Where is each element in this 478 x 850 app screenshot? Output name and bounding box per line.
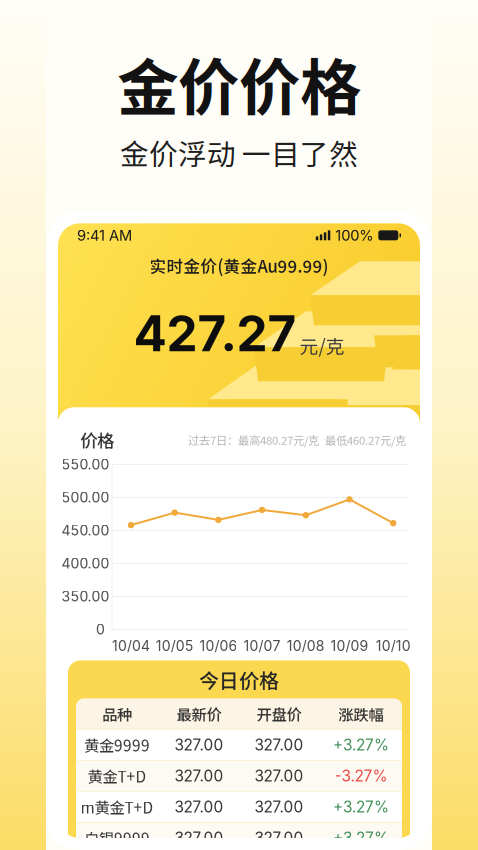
staticText: 0 (96, 621, 105, 638)
staticText: 350.00 (61, 588, 109, 605)
staticText: 10/06 (199, 637, 237, 654)
staticText: 327.00 (174, 798, 223, 816)
staticText: 过去7日：最高480.27元/克 最低460.27元/克 (188, 432, 406, 448)
staticText: 品种 (102, 703, 132, 725)
staticText: 价格 (80, 427, 114, 452)
staticText: 327.00 (174, 829, 223, 847)
staticText: 327.00 (254, 736, 303, 754)
staticText: 327.00 (254, 767, 303, 785)
staticText: 今日价格 (199, 665, 279, 694)
staticText: +3.27% (333, 736, 389, 754)
staticText: 10/05 (156, 637, 194, 654)
staticText: 100% (335, 226, 373, 244)
staticText: -3.27% (334, 767, 387, 785)
staticText: 实时金价(黄金Au99.99) (149, 253, 328, 277)
staticText: 黄金T+D (87, 765, 146, 787)
staticText: 涨跌幅 (338, 703, 383, 725)
staticText: 450.00 (61, 522, 109, 539)
staticText: +3.27% (333, 798, 389, 816)
staticText: 427.27 (133, 303, 296, 363)
staticText: +3.27% (333, 829, 389, 847)
staticText: 白银9999 (84, 827, 150, 849)
staticText: 550.00 (61, 456, 109, 473)
staticText: 10/04 (112, 637, 150, 654)
staticText: 10/07 (244, 637, 281, 654)
staticText: 327.00 (254, 798, 303, 816)
staticText: 400.00 (61, 555, 109, 572)
staticText: m黄金T+D (80, 796, 153, 818)
staticText: 327.00 (254, 829, 303, 847)
staticText: 金价浮动 一目了然 (120, 132, 358, 173)
staticText: 9:41 AM (77, 226, 132, 244)
staticText: 最新价 (176, 703, 221, 725)
staticText: 10/10 (376, 637, 411, 654)
staticText: 黄金9999 (84, 734, 150, 756)
staticText: 10/09 (330, 637, 368, 654)
staticText: 10/08 (287, 637, 325, 654)
staticText: 327.00 (174, 736, 223, 754)
staticText: 开盘价 (256, 703, 301, 725)
staticText: 元/克 (299, 332, 344, 359)
staticText: 500.00 (61, 489, 109, 506)
staticText: 327.00 (174, 767, 223, 785)
staticText: 金价价格 (117, 39, 361, 128)
